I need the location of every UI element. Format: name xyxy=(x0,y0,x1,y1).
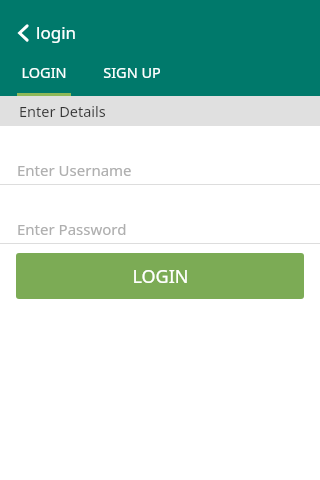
button[interactable]: Back xyxy=(14,18,80,47)
staticText: login xyxy=(36,21,77,44)
staticText: LOGIN xyxy=(21,62,67,82)
other: Back xyxy=(17,24,30,42)
staticText: Enter Username xyxy=(17,160,132,180)
staticText: Enter Password xyxy=(17,219,127,239)
button[interactable]: SIGN UP xyxy=(88,58,176,96)
staticText: SIGN UP xyxy=(103,62,161,82)
button[interactable]: Enter Username xyxy=(0,155,320,184)
button[interactable]: Enter Password xyxy=(0,214,320,243)
button[interactable]: LOGIN xyxy=(0,58,88,96)
button[interactable]: LOGIN xyxy=(16,253,304,299)
staticText: Enter Details xyxy=(19,101,106,121)
staticText: LOGIN xyxy=(132,264,189,289)
